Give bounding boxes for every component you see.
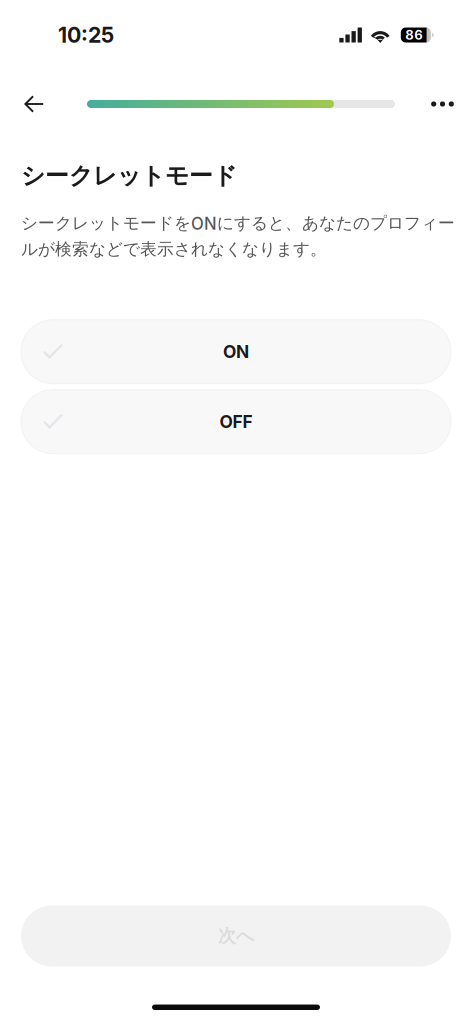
staticText: 10:25	[58, 22, 114, 48]
staticText: ON	[223, 341, 249, 362]
button[interactable]: Back	[24, 82, 67, 126]
button[interactable]: More options	[410, 82, 453, 126]
staticText: シークレットモード	[21, 161, 237, 191]
staticText: OFF	[219, 411, 252, 432]
button[interactable]: OFF	[21, 390, 451, 454]
staticText: 86	[405, 27, 422, 43]
staticText: ルが検索などで表示されなくなります。	[21, 239, 327, 260]
button[interactable]: ON	[21, 320, 451, 384]
staticText: 次へ	[218, 925, 254, 947]
staticText: シークレットモードをONにすると、あなたのプロフィー	[21, 213, 455, 234]
